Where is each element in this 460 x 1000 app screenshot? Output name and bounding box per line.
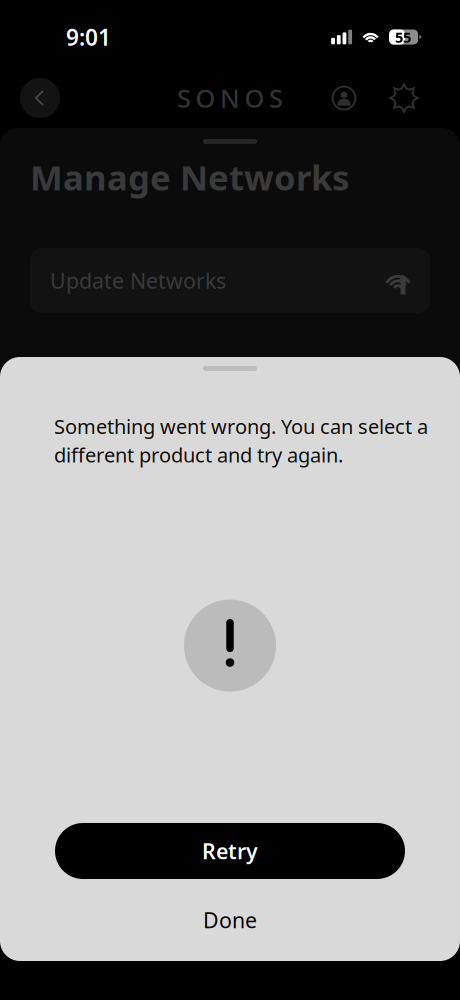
- button[interactable]: Account: [324, 78, 364, 118]
- button[interactable]: Settings: [384, 78, 424, 118]
- staticText: Retry: [202, 837, 258, 865]
- staticText: Update Networks: [50, 266, 226, 295]
- button[interactable]: Retry: [0, 823, 460, 879]
- staticText: S: [269, 81, 283, 115]
- staticText: Manage Networks: [30, 154, 349, 200]
- staticText: Done: [203, 906, 257, 934]
- staticText: O: [244, 81, 264, 115]
- staticText: Something went wrong. You can select a d…: [54, 413, 428, 468]
- button[interactable]: Done: [0, 895, 460, 945]
- button[interactable]: Update Networks: [0, 248, 460, 313]
- staticText: O: [195, 81, 215, 115]
- staticText: 9:01: [66, 22, 111, 52]
- staticText: S: [177, 81, 191, 115]
- staticText: 55: [395, 27, 411, 47]
- staticText: N: [220, 81, 240, 115]
- button[interactable]: Back: [20, 78, 60, 118]
